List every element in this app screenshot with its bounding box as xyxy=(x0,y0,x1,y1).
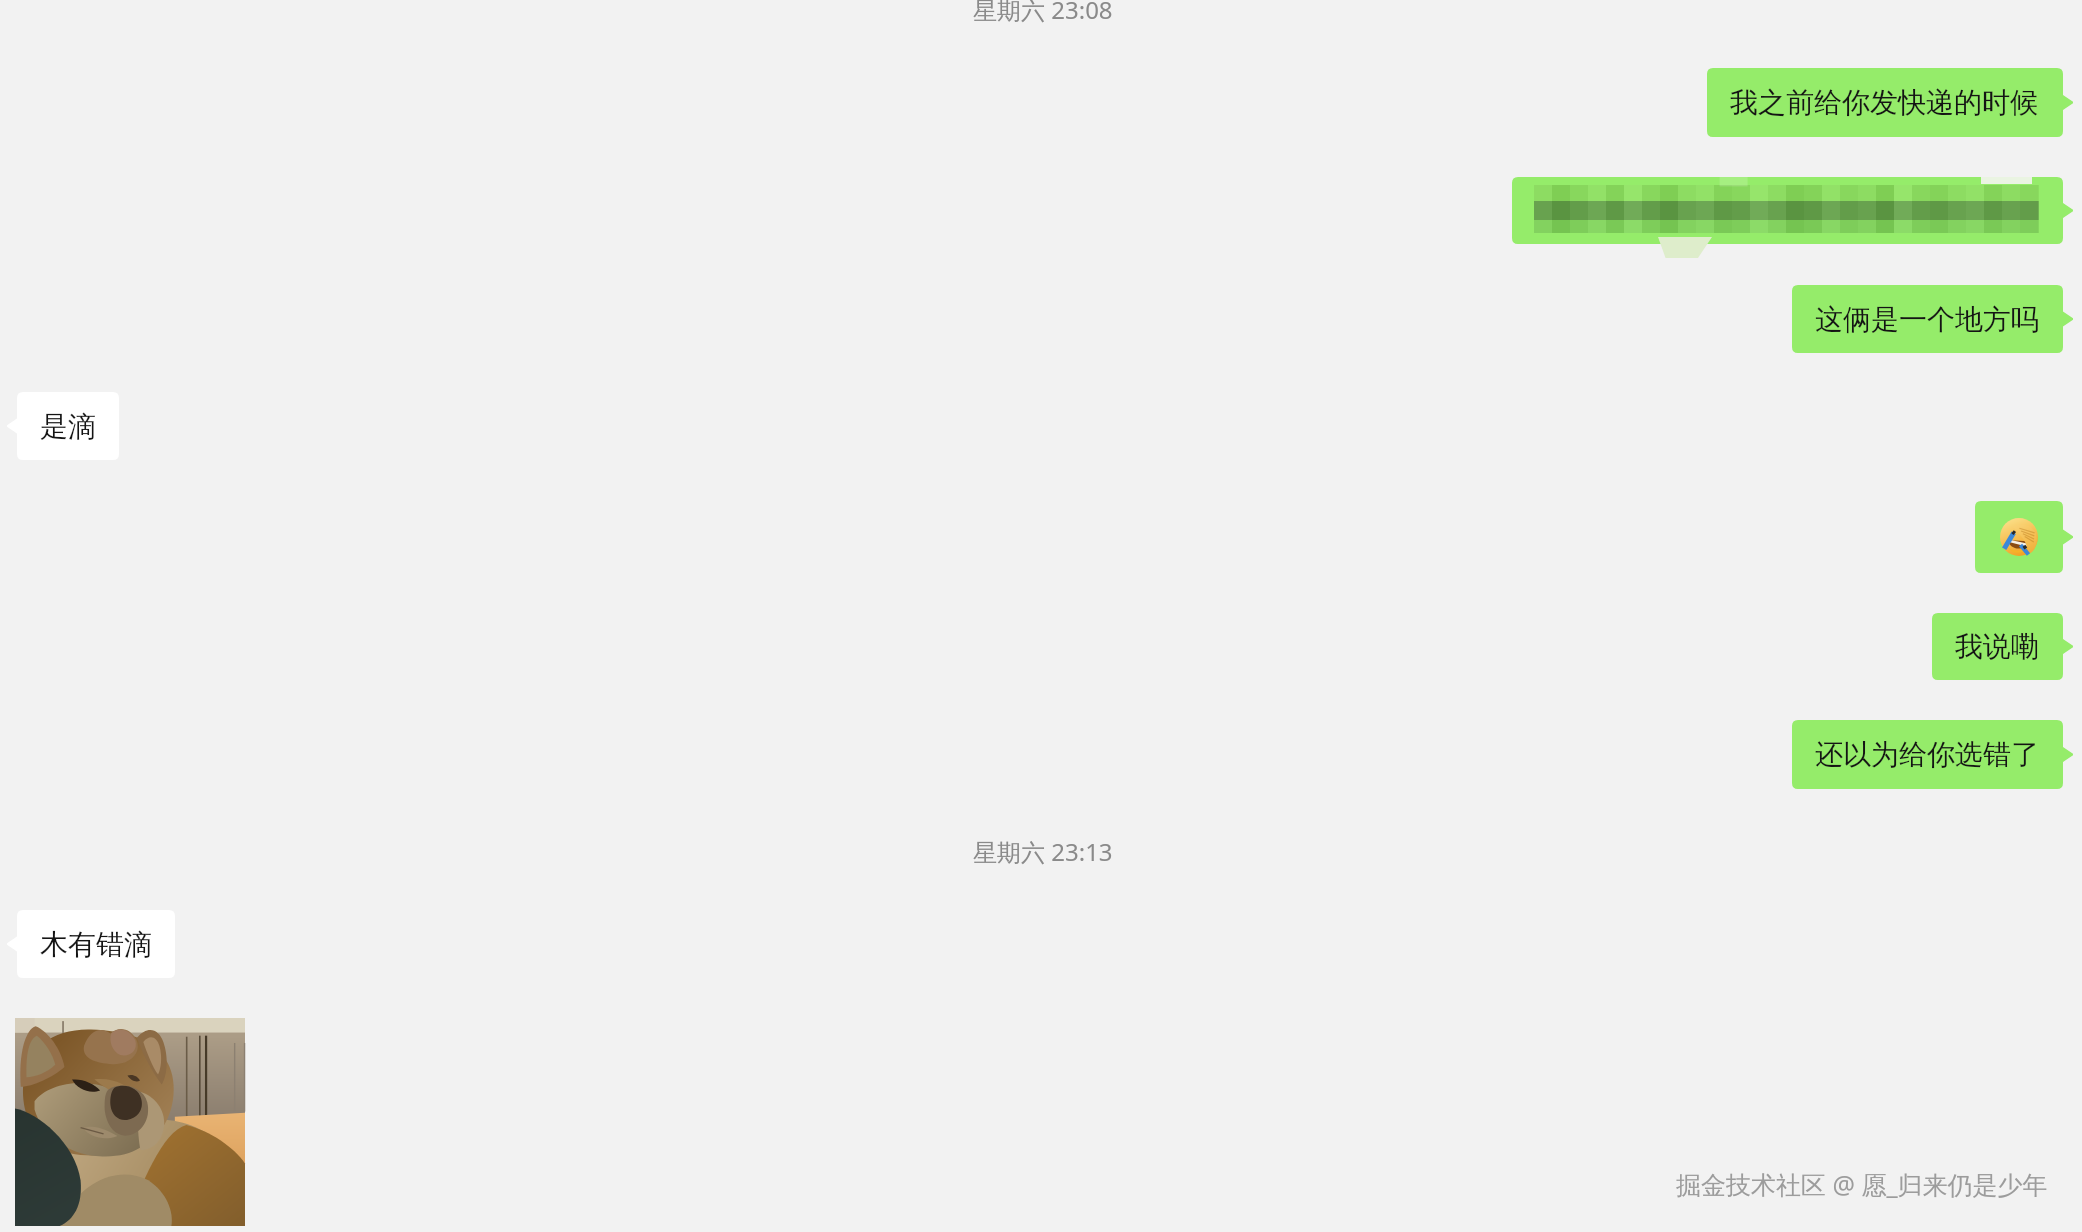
staticText: 是滴 xyxy=(40,409,96,444)
staticText: 星期六 23:13 xyxy=(973,835,1113,868)
button[interactable]: 木有错滴 xyxy=(7,910,175,978)
staticText: 我说嘞 xyxy=(1955,629,2039,664)
button[interactable]: Photo of a shiba inu dog xyxy=(15,1018,245,1226)
button[interactable]: 还以为给你选错了 xyxy=(1792,720,2073,789)
button[interactable]: 是滴 xyxy=(7,392,119,460)
button[interactable]: 我说嘞 xyxy=(1932,613,2073,680)
button[interactable]: 这俩是一个地方吗 xyxy=(1792,285,2073,353)
staticText: 木有错滴 xyxy=(40,927,152,962)
staticText: 还以为给你选错了 xyxy=(1815,737,2039,772)
staticText: 掘金技术社区 @ 愿_归来仍是少年 xyxy=(1676,1167,2048,1201)
button[interactable]: Laughing emoji xyxy=(1975,501,2073,573)
staticText: 这俩是一个地方吗 xyxy=(1815,302,2039,337)
button[interactable]: 我之前给你发快递的时候 xyxy=(1707,68,2073,137)
staticText: 星期六 23:08 xyxy=(973,0,1113,26)
staticText: 我之前给你发快递的时候 xyxy=(1730,85,2038,120)
button[interactable]: Blurred message xyxy=(1512,177,2073,244)
